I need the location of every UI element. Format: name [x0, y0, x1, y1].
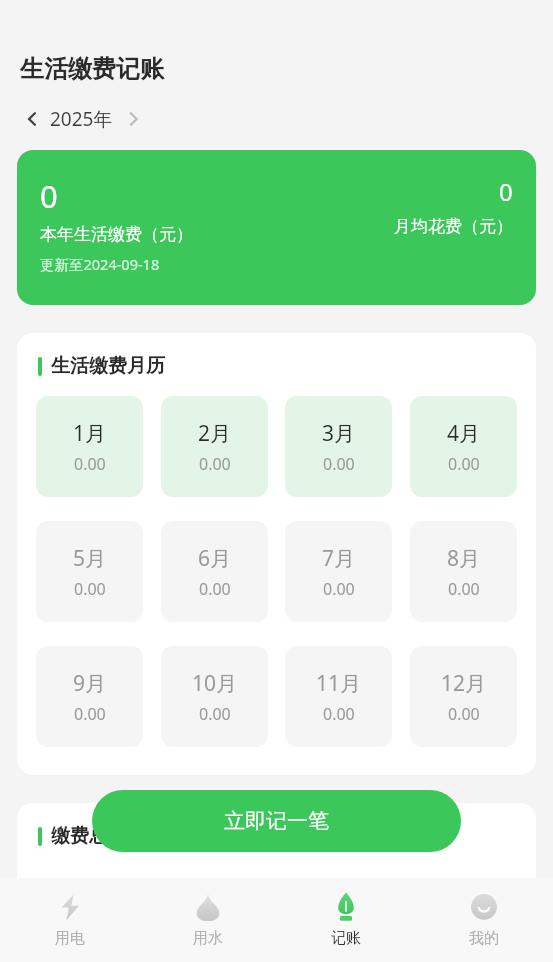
staticText: 0.00 — [74, 453, 106, 475]
staticText: 7月 — [322, 544, 356, 573]
staticText: 0.00 — [323, 453, 355, 475]
staticText: 0.00 — [323, 703, 355, 725]
button[interactable]: 2月 — [161, 396, 268, 497]
staticText: 用电 — [55, 929, 85, 948]
button[interactable]: 4月 — [410, 396, 517, 497]
staticText: 10月 — [192, 669, 238, 698]
button[interactable]: 10月 — [161, 646, 268, 747]
staticText: 2025年 — [50, 106, 113, 132]
button[interactable]: 12月 — [410, 646, 517, 747]
other: Next year — [124, 110, 142, 128]
staticText: 3月 — [322, 419, 356, 448]
staticText: 4月 — [447, 419, 481, 448]
staticText: 1月 — [73, 419, 107, 448]
button[interactable]: 记账 — [277, 878, 415, 962]
button[interactable]: 立即记一笔 — [92, 790, 461, 852]
button[interactable]: 3月 — [285, 396, 392, 497]
staticText: 5月 — [73, 544, 107, 573]
staticText: 生活缴费记账 — [20, 54, 164, 84]
staticText: 8月 — [447, 544, 481, 573]
staticText: 0.00 — [448, 453, 480, 475]
staticText: 0.00 — [199, 578, 231, 600]
staticText: 0.00 — [448, 703, 480, 725]
button[interactable]: 用水 — [139, 878, 277, 962]
staticText: 2月 — [198, 419, 232, 448]
button[interactable]: 7月 — [285, 521, 392, 622]
staticText: 0.00 — [199, 453, 231, 475]
button[interactable]: 我的 — [415, 878, 553, 962]
staticText: 记账 — [331, 929, 361, 948]
staticText: 0.00 — [448, 578, 480, 600]
staticText: 0.00 — [74, 578, 106, 600]
staticText: 缴费总览 — [51, 824, 127, 848]
button[interactable]: 8月 — [410, 521, 517, 622]
staticText: 12月 — [441, 669, 487, 698]
staticText: 我的 — [469, 929, 499, 948]
button[interactable]: 6月 — [161, 521, 268, 622]
button[interactable]: Previous year — [20, 107, 44, 131]
staticText: 6月 — [198, 544, 232, 573]
staticText: 0.00 — [199, 703, 231, 725]
button[interactable]: 11月 — [285, 646, 392, 747]
button[interactable]: 1月 — [36, 396, 143, 497]
button[interactable]: 9月 — [36, 646, 143, 747]
other: Previous year — [23, 110, 41, 128]
staticText: 本年生活缴费（元） — [40, 224, 193, 245]
staticText: 0 — [40, 175, 58, 217]
staticText: 0.00 — [74, 703, 106, 725]
staticText: 生活缴费月历 — [51, 354, 165, 378]
staticText: 0 — [499, 175, 513, 208]
button[interactable]: 0 — [17, 150, 536, 305]
staticText: 用水 — [193, 929, 223, 948]
staticText: 更新至2024-09-18 — [40, 254, 160, 274]
staticText: 11月 — [316, 669, 362, 698]
staticText: 0.00 — [323, 578, 355, 600]
button[interactable]: Next year — [121, 107, 145, 131]
button[interactable]: 用电 — [0, 878, 139, 962]
staticText: 月均花费（元） — [394, 216, 513, 237]
button[interactable]: 5月 — [36, 521, 143, 622]
staticText: 9月 — [73, 669, 107, 698]
staticText: 立即记一笔 — [224, 808, 329, 834]
